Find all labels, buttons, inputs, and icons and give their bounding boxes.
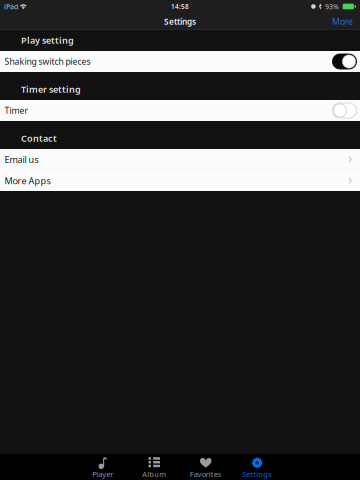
staticText: Settings xyxy=(242,469,272,479)
staticText: Timer setting xyxy=(21,83,81,95)
staticText: Contact xyxy=(21,132,57,144)
staticText: Settings xyxy=(164,16,196,27)
staticText: More xyxy=(332,16,353,27)
button[interactable]: Settings xyxy=(231,454,283,480)
staticText: 93% xyxy=(325,2,339,11)
staticText: More Apps xyxy=(4,174,50,187)
staticText: Shaking switch pieces xyxy=(4,56,90,67)
staticText: Email us xyxy=(4,153,38,165)
button[interactable]: Shaking switch pieces xyxy=(0,51,360,72)
staticText: Favorites xyxy=(190,469,222,479)
staticText: 14:58 xyxy=(171,2,189,11)
button[interactable]: Album xyxy=(128,454,180,480)
button[interactable]: Timer xyxy=(0,100,360,121)
staticText: Album xyxy=(142,469,166,479)
button[interactable]: Email us xyxy=(0,149,360,170)
button[interactable]: Player xyxy=(77,454,128,480)
staticText: Play setting xyxy=(21,34,74,46)
staticText: Player xyxy=(92,469,113,479)
button[interactable]: More xyxy=(320,13,360,30)
staticText: Timer xyxy=(4,105,28,116)
staticText: iPad xyxy=(4,2,18,11)
button[interactable]: Favorites xyxy=(180,454,231,480)
button[interactable]: More Apps xyxy=(0,170,360,191)
